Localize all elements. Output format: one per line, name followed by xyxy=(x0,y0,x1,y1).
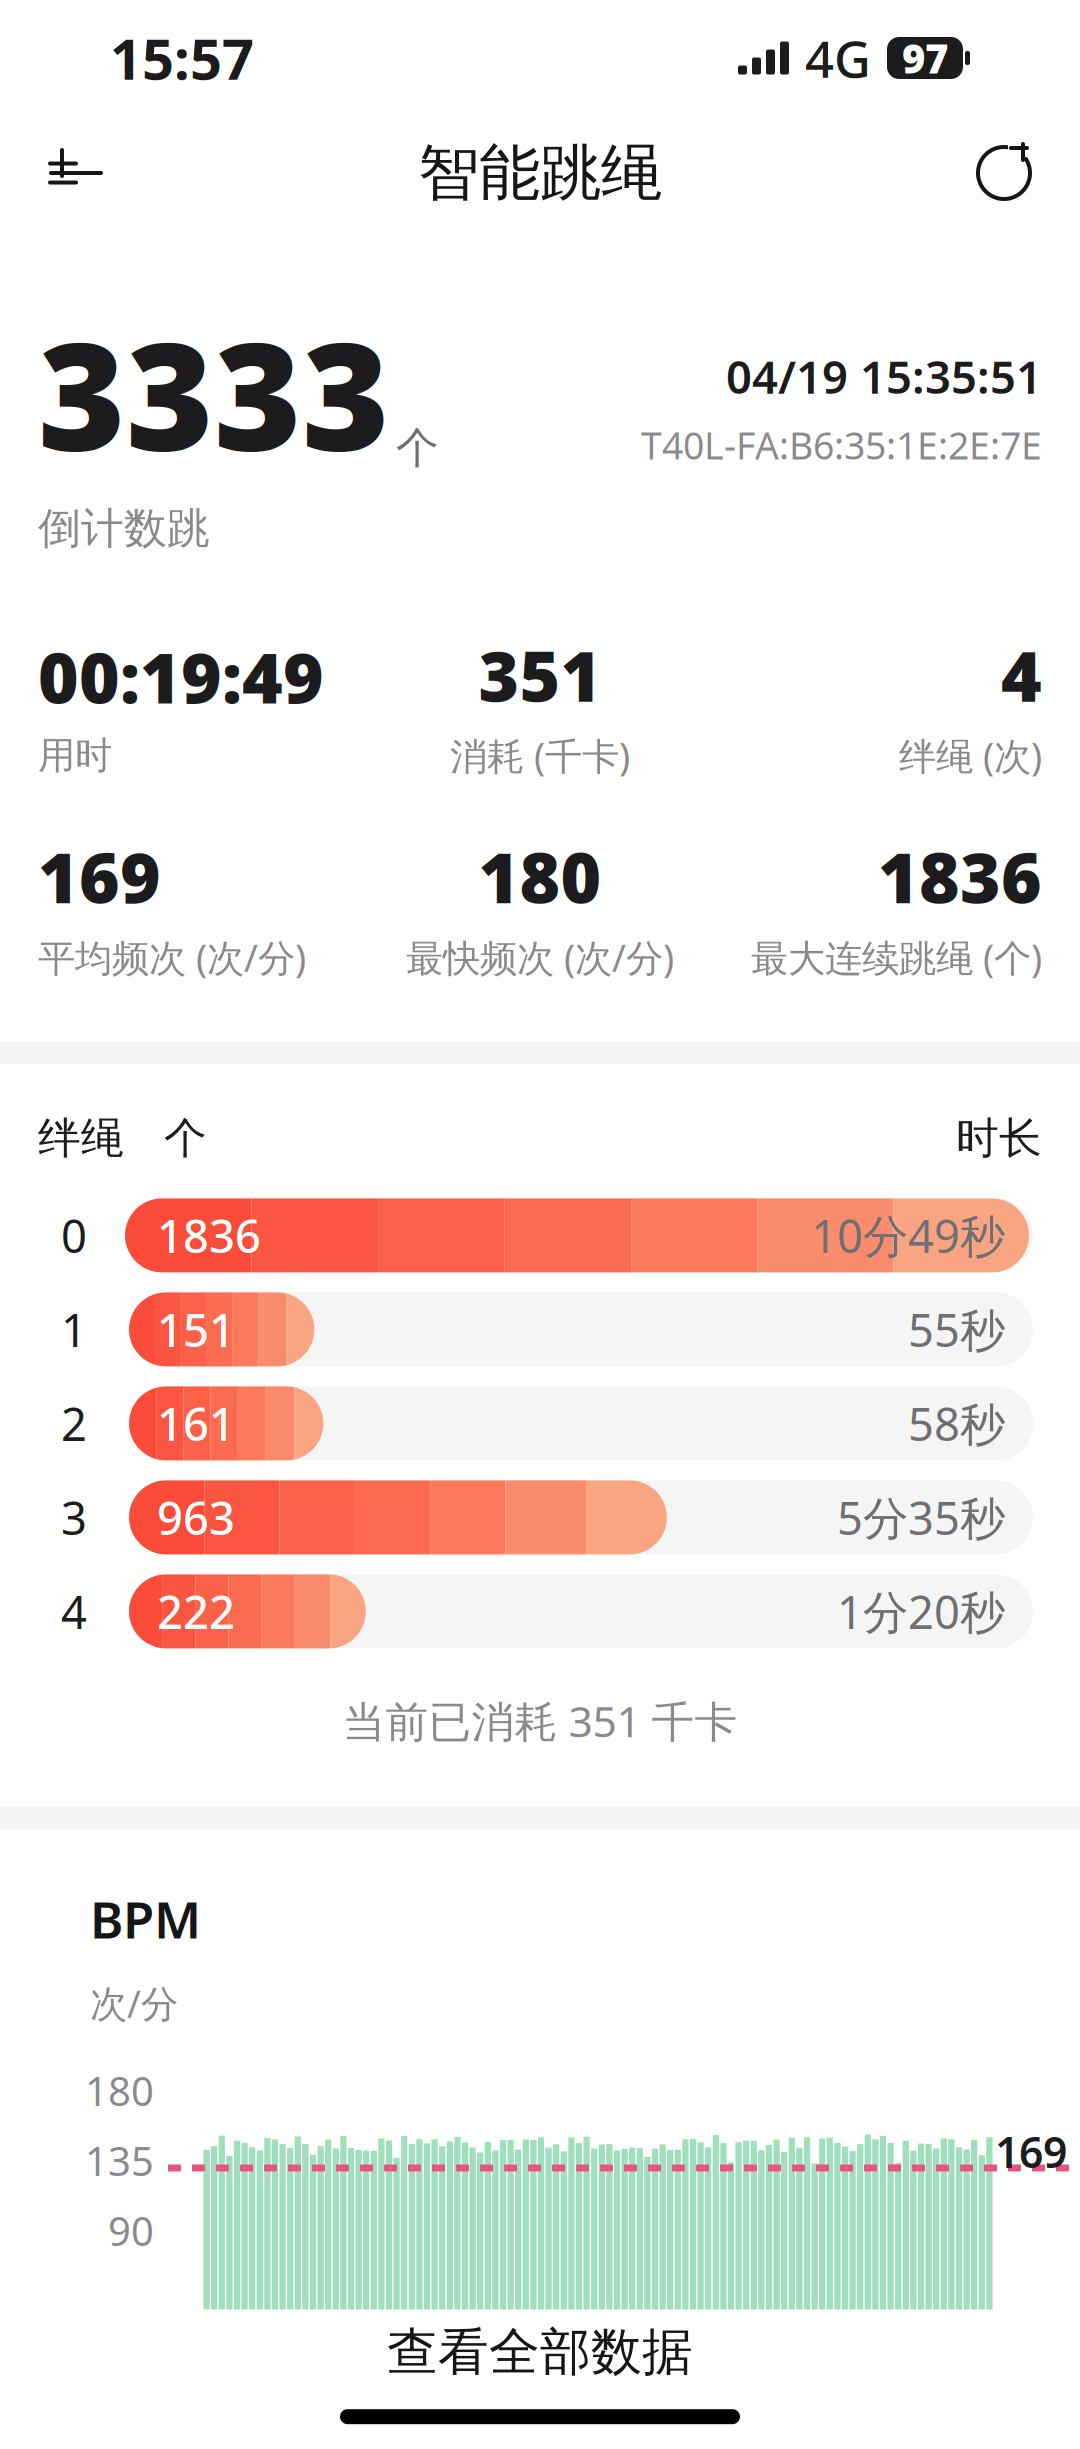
staticText: 151 xyxy=(157,1299,235,1359)
staticText: 1 xyxy=(61,1299,87,1359)
staticText: 1分20秒 xyxy=(837,1581,1005,1641)
staticText: 平均频次 (次/分) xyxy=(38,932,306,982)
staticText: 时长 xyxy=(956,1112,1042,1164)
staticText: 963 xyxy=(157,1487,235,1547)
staticText: 10分49秒 xyxy=(811,1205,1005,1265)
staticText: 查看全部数据 xyxy=(387,2321,693,2383)
staticText: 最快频次 (次/分) xyxy=(406,932,674,982)
staticText: 180 xyxy=(478,830,601,922)
staticText: BPM xyxy=(90,1885,201,1952)
staticText: 4 xyxy=(1001,629,1042,721)
staticText: 351 xyxy=(478,629,601,721)
button[interactable]: 查看全部数据 xyxy=(0,2303,1080,2401)
staticText: 消耗 (千卡) xyxy=(450,731,630,780)
staticText: 5分35秒 xyxy=(837,1487,1005,1547)
staticText: 当前已消耗 351 千卡 xyxy=(342,1692,737,1749)
button[interactable]: Back xyxy=(28,125,124,221)
staticText: 绊绳 xyxy=(38,1112,124,1164)
staticText: 1836 xyxy=(157,1205,261,1265)
staticText: 135 xyxy=(85,2134,154,2187)
staticText: 1836 xyxy=(878,830,1042,922)
staticText: 180 xyxy=(85,2064,154,2117)
staticText: 个 xyxy=(396,422,439,474)
staticText: 用时 xyxy=(38,733,112,778)
staticText: 00:19:49 xyxy=(38,631,324,723)
staticText: 智能跳绳 xyxy=(418,135,662,211)
staticText: 0 xyxy=(61,1205,87,1265)
staticText: 90 xyxy=(108,2204,154,2257)
staticText: 3 xyxy=(61,1487,87,1547)
staticText: 倒计数跳 xyxy=(38,502,210,555)
staticText: 169 xyxy=(38,830,161,922)
staticText: 4 xyxy=(61,1581,87,1641)
staticText: 绊绳 (次) xyxy=(899,731,1042,780)
staticText: 最大连续跳绳 (个) xyxy=(751,932,1042,982)
staticText: 169 xyxy=(995,2123,1067,2180)
staticText: 2 xyxy=(61,1393,87,1453)
staticText: 次/分 xyxy=(90,1978,178,2028)
button[interactable]: Refresh xyxy=(956,125,1052,221)
staticText: 222 xyxy=(157,1581,235,1641)
staticText: 97 xyxy=(902,31,948,84)
staticText: T40L-FA:B6:35:1E:2E:7E xyxy=(641,420,1042,470)
staticText: 3333 xyxy=(38,294,390,492)
staticText: 个 xyxy=(164,1112,207,1164)
staticText: 04/19 15:35:51 xyxy=(726,346,1042,406)
staticText: 161 xyxy=(157,1393,235,1453)
staticText: 58秒 xyxy=(908,1393,1005,1453)
staticText: 4G xyxy=(805,24,871,92)
staticText: 55秒 xyxy=(908,1299,1005,1359)
staticText: 15:57 xyxy=(110,21,254,95)
